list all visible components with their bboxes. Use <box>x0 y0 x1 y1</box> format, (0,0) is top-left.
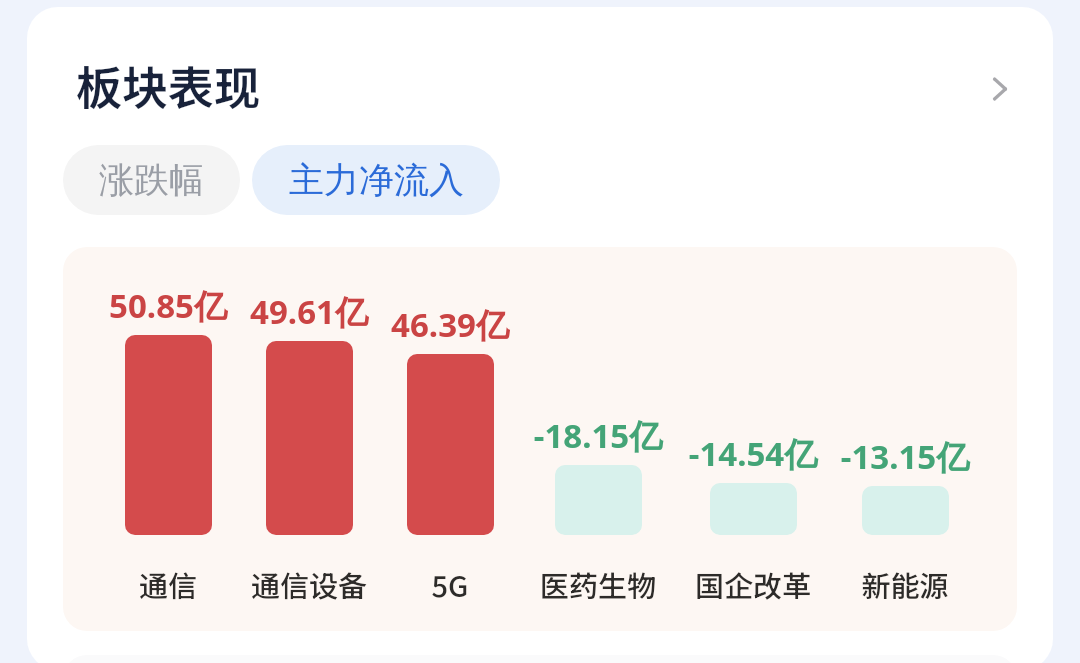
staticText: -14.54亿 <box>633 431 873 476</box>
staticText: -13.15亿 <box>785 434 1017 479</box>
button[interactable]: 主力净流入 <box>252 145 500 215</box>
staticText: 国企改革 <box>633 563 873 605</box>
button[interactable] <box>266 341 353 535</box>
button[interactable] <box>125 335 212 535</box>
staticText: 46.39亿 <box>330 302 570 347</box>
staticText: 50.85亿 <box>63 283 288 328</box>
staticText: 通信 <box>63 563 288 605</box>
staticText: 5G <box>330 563 570 605</box>
staticText: 医药生物 <box>478 563 718 605</box>
button[interactable] <box>407 354 494 535</box>
button[interactable]: 查看更多 板块表现 <box>952 41 1048 137</box>
button[interactable] <box>862 486 949 535</box>
staticText: 板块表现 <box>76 52 260 119</box>
button[interactable] <box>710 483 797 535</box>
button[interactable] <box>555 465 642 535</box>
staticText: -18.15亿 <box>478 413 718 458</box>
staticText: 49.61亿 <box>189 289 429 334</box>
staticText: 涨跌幅 <box>99 158 204 202</box>
button[interactable]: 涨跌幅 <box>63 145 240 215</box>
staticText: 新能源 <box>785 563 1017 605</box>
staticText: 主力净流入 <box>289 158 464 202</box>
staticText: 通信设备 <box>189 563 429 605</box>
